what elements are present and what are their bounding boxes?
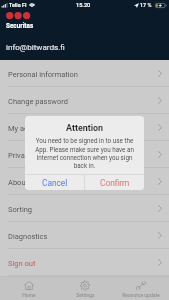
button[interactable]: Home — [0, 277, 57, 300]
staticText: Attention — [25, 123, 144, 133]
button[interactable]: Privacy policy — [0, 141, 169, 168]
button[interactable]: Resource update — [113, 277, 169, 300]
staticText: Change password — [8, 97, 68, 106]
staticText: Confirm — [100, 178, 130, 188]
button[interactable]: Settings — [57, 277, 113, 300]
staticText: Cancel — [42, 178, 68, 188]
staticText: Sorting — [8, 205, 33, 214]
staticText: Resource update — [122, 292, 160, 298]
staticText: Telia FI — [9, 2, 27, 8]
staticText: info@bitwards.fi — [6, 42, 65, 51]
staticText: 15.20 — [76, 2, 91, 9]
button[interactable]: Cancel — [25, 175, 84, 190]
staticText: Settings — [76, 292, 95, 298]
button[interactable]: Sorting — [0, 195, 169, 222]
staticText: About — [8, 178, 28, 187]
button[interactable]: Personal information — [0, 60, 169, 87]
staticText: 17 % — [140, 2, 152, 8]
staticText: Personal information — [8, 70, 79, 79]
staticText: Home — [22, 292, 36, 298]
staticText: Securitas — [6, 22, 34, 29]
button[interactable]: Diagnostics — [0, 222, 169, 249]
button[interactable]: My account — [0, 114, 169, 141]
staticText: My account — [8, 124, 47, 133]
staticText: You need to be signed in to use the App.… — [34, 137, 135, 169]
button[interactable]: Change password — [0, 87, 169, 114]
staticText: Diagnostics — [8, 232, 48, 241]
button[interactable]: About — [0, 168, 169, 195]
button[interactable]: Confirm — [85, 175, 144, 190]
staticText: Privacy policy — [8, 151, 54, 160]
button[interactable]: Sign out — [0, 249, 169, 276]
staticText: Sign out — [8, 259, 36, 268]
